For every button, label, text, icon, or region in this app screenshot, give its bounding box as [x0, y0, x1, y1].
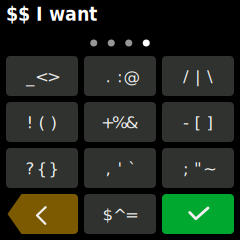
staticText: . [105, 67, 110, 86]
button[interactable]: ! [6, 102, 78, 142]
staticText: < [35, 67, 49, 86]
staticText: ) [50, 113, 57, 132]
staticText: ; [183, 159, 189, 178]
button[interactable]: Done [162, 194, 234, 234]
staticText: > [47, 67, 61, 86]
staticText: $ [102, 205, 113, 224]
staticText: @ [123, 67, 140, 86]
staticText: - [183, 113, 189, 132]
button[interactable]: - [162, 102, 234, 142]
staticText: | [195, 67, 201, 86]
staticText: } [48, 159, 59, 178]
staticText: ( [38, 113, 45, 132]
button[interactable]: / [162, 56, 234, 96]
staticText: + [101, 113, 115, 132]
button[interactable]: . [84, 56, 156, 96]
staticText: ^ [113, 205, 127, 224]
button[interactable]: _ [6, 56, 78, 96]
staticText: & [125, 113, 138, 132]
staticText: $$ I want [6, 3, 97, 25]
staticText: : [117, 67, 123, 86]
staticText: _ [26, 67, 34, 86]
staticText: { [36, 159, 47, 178]
staticText: " [194, 159, 202, 178]
staticText: / [183, 67, 189, 86]
staticText: % [112, 113, 128, 132]
staticText: \ [207, 67, 213, 86]
staticText: ! [26, 113, 33, 132]
staticText: ? [25, 159, 34, 178]
button[interactable]: ; [162, 148, 234, 188]
staticText: ~ [203, 159, 217, 178]
button[interactable]: ? [6, 148, 78, 188]
staticText: ' [117, 159, 122, 178]
button[interactable]: $ [84, 194, 156, 234]
staticText: [ [194, 113, 201, 132]
staticText: = [125, 205, 139, 224]
staticText: ] [206, 113, 213, 132]
staticText: ` [128, 159, 136, 178]
button[interactable]: , [84, 148, 156, 188]
staticText: , [105, 159, 110, 178]
button[interactable]: + [84, 102, 156, 142]
button[interactable]: Delete [6, 194, 78, 234]
